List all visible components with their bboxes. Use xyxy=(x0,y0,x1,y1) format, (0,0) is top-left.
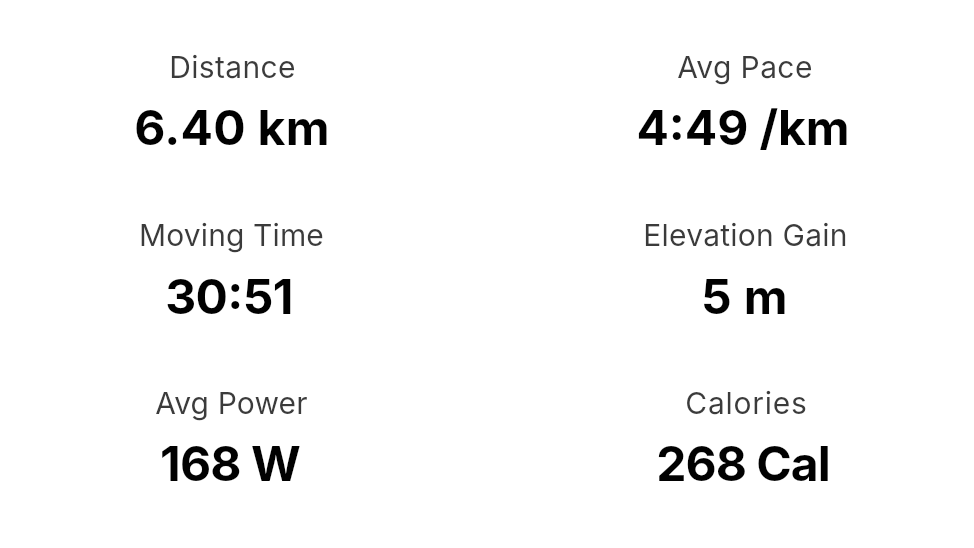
staticText: 4:49 /km xyxy=(636,98,850,156)
staticText: Calories xyxy=(685,385,808,421)
button[interactable]: Avg Pace xyxy=(509,25,974,172)
staticText: Moving Time xyxy=(139,217,324,253)
button[interactable]: Elevation Gain xyxy=(509,193,974,340)
button[interactable]: Moving Time xyxy=(0,193,466,340)
staticText: 6.40 km xyxy=(134,98,330,156)
staticText: Avg Pace xyxy=(677,49,813,85)
button[interactable]: Distance xyxy=(0,25,466,172)
staticText: 168 W xyxy=(160,434,300,492)
staticText: Distance xyxy=(169,49,296,85)
staticText: 268 Cal xyxy=(656,434,830,492)
staticText: 30:51 xyxy=(165,267,293,325)
button[interactable]: Avg Power xyxy=(0,361,466,507)
staticText: 5 m xyxy=(701,267,788,325)
button[interactable]: Calories xyxy=(509,361,974,507)
staticText: Elevation Gain xyxy=(643,217,848,253)
staticText: Avg Power xyxy=(155,385,308,421)
